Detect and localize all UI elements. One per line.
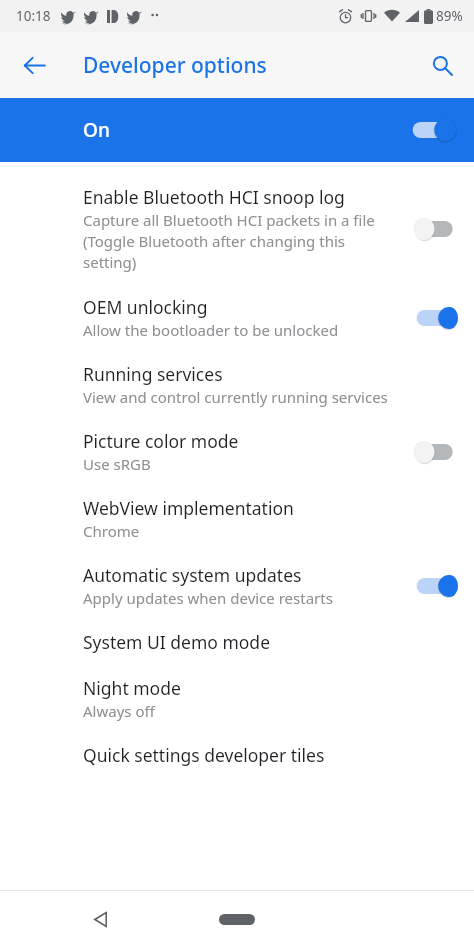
- staticText: View and control currently running servi…: [83, 387, 388, 407]
- staticText: Chrome: [83, 521, 140, 541]
- staticText: Allow the bootloader to be unlocked: [83, 320, 339, 340]
- staticText: Running services: [83, 362, 223, 386]
- staticText: 10:18: [16, 7, 51, 25]
- staticText: System UI demo mode: [83, 630, 271, 654]
- staticText: OEM unlocking: [83, 295, 208, 319]
- staticText: Apply updates when device restarts: [83, 588, 333, 608]
- button[interactable]: Night mode: [0, 665, 474, 732]
- button[interactable]: Enable Bluetooth HCI snoop log: [0, 174, 474, 284]
- button[interactable]: Automatic system updates toggle: [414, 573, 458, 599]
- button[interactable]: Enable Bluetooth HCI snoop log toggle: [414, 216, 458, 242]
- button[interactable]: Picture color mode toggle: [414, 439, 458, 465]
- staticText: Use sRGB: [83, 454, 151, 474]
- staticText: WebView implementation: [83, 496, 294, 520]
- button[interactable]: Back: [10, 41, 58, 89]
- button[interactable]: Quick settings developer tiles: [0, 732, 474, 778]
- staticText: Always off: [83, 701, 155, 721]
- button[interactable]: Running services: [0, 351, 474, 418]
- button[interactable]: Home: [207, 899, 267, 939]
- staticText: 89%: [436, 7, 463, 25]
- button[interactable]: OEM unlocking toggle: [414, 305, 458, 331]
- staticText: Quick settings developer tiles: [83, 743, 325, 767]
- button[interactable]: OEM unlocking: [0, 284, 474, 351]
- staticText: Enable Bluetooth HCI snoop log: [83, 185, 345, 209]
- staticText: Capture all Bluetooth HCI packets in a f…: [83, 210, 402, 273]
- button[interactable]: Search: [418, 41, 466, 89]
- staticText: Automatic system updates: [83, 563, 302, 587]
- button[interactable]: Picture color mode: [0, 418, 474, 485]
- staticText: Picture color mode: [83, 429, 239, 453]
- button[interactable]: WebView implementation: [0, 485, 474, 552]
- button[interactable]: System UI demo mode: [0, 619, 474, 665]
- button[interactable]: Automatic system updates: [0, 552, 474, 619]
- button[interactable]: On: [0, 98, 474, 162]
- staticText: Night mode: [83, 676, 181, 700]
- staticText: On: [83, 117, 410, 143]
- button[interactable]: Back: [78, 897, 122, 941]
- staticText: Developer options: [83, 51, 267, 80]
